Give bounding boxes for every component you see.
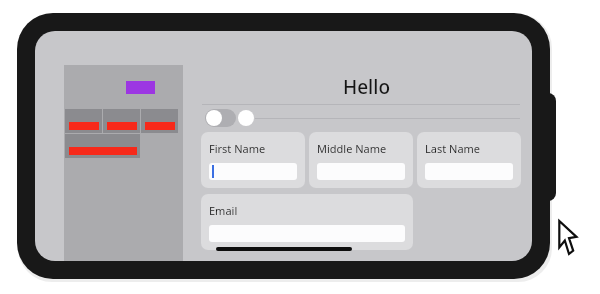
button[interactable]: Last Name xyxy=(417,132,521,188)
button[interactable] xyxy=(141,109,178,133)
button[interactable]: Hello xyxy=(201,74,531,100)
button[interactable] xyxy=(65,109,102,133)
button[interactable] xyxy=(65,134,140,158)
staticText: Hello xyxy=(343,74,390,100)
button[interactable]: Middle Name xyxy=(309,132,413,188)
button[interactable] xyxy=(64,65,183,261)
button[interactable]: Toggle two xyxy=(238,110,254,126)
staticText: Middle Name xyxy=(317,141,387,156)
staticText: Email xyxy=(209,203,238,218)
button[interactable] xyxy=(103,109,140,133)
button[interactable]: First Name xyxy=(201,132,305,188)
button[interactable]: Toggle one xyxy=(205,109,236,127)
staticText: Last Name xyxy=(425,141,481,156)
button[interactable]: Email xyxy=(201,194,413,250)
staticText: First Name xyxy=(209,141,266,156)
button[interactable]: Power xyxy=(539,93,556,201)
